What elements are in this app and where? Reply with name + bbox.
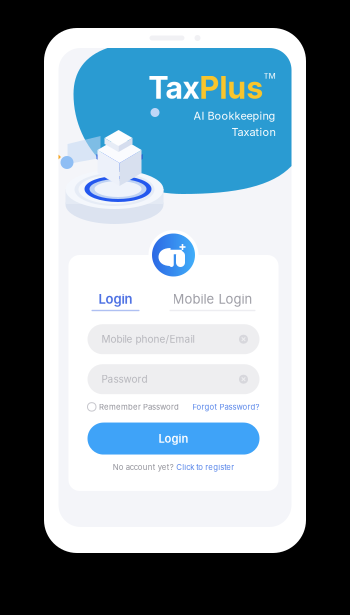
button[interactable]: Login xyxy=(91,291,139,311)
button[interactable]: Login xyxy=(87,423,259,455)
staticText: Tax xyxy=(148,69,199,106)
button[interactable]: Clear Password xyxy=(236,372,250,386)
staticText: TM xyxy=(263,71,275,81)
button[interactable]: Remember Password xyxy=(87,402,179,412)
staticText: Remember Password xyxy=(99,402,179,412)
button[interactable]: Clear Mobile phone/Email xyxy=(236,332,250,346)
staticText: No account yet? xyxy=(113,463,174,472)
staticText: Password xyxy=(101,373,147,385)
button[interactable]: Forgot Password? xyxy=(192,402,259,412)
button[interactable]: Click to register xyxy=(176,463,234,472)
staticText: Login xyxy=(158,432,188,445)
staticText: Mobile phone/Email xyxy=(101,333,194,345)
staticText: Taxation xyxy=(231,125,275,138)
staticText: Mobile Login xyxy=(172,291,252,307)
staticText: Forgot Password? xyxy=(192,402,259,412)
staticText: Click to register xyxy=(176,463,234,472)
button[interactable]: Mobile Login xyxy=(169,291,255,311)
staticText: Login xyxy=(98,291,132,307)
staticText: AI Bookkeeping xyxy=(193,109,275,122)
staticText: Plus xyxy=(199,69,263,106)
